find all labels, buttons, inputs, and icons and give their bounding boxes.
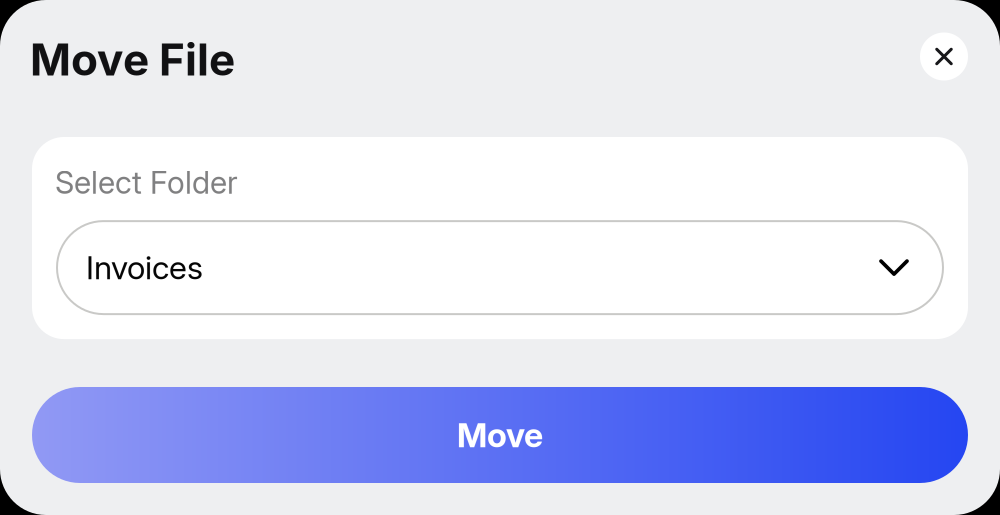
button[interactable]: Close [920,32,968,80]
staticText: Invoices [86,248,203,287]
button[interactable]: Invoices [57,221,943,314]
staticText: Move [457,415,543,455]
staticText: Move File [30,33,235,86]
button[interactable]: Move [32,387,968,483]
staticText: Select Folder [55,164,238,201]
